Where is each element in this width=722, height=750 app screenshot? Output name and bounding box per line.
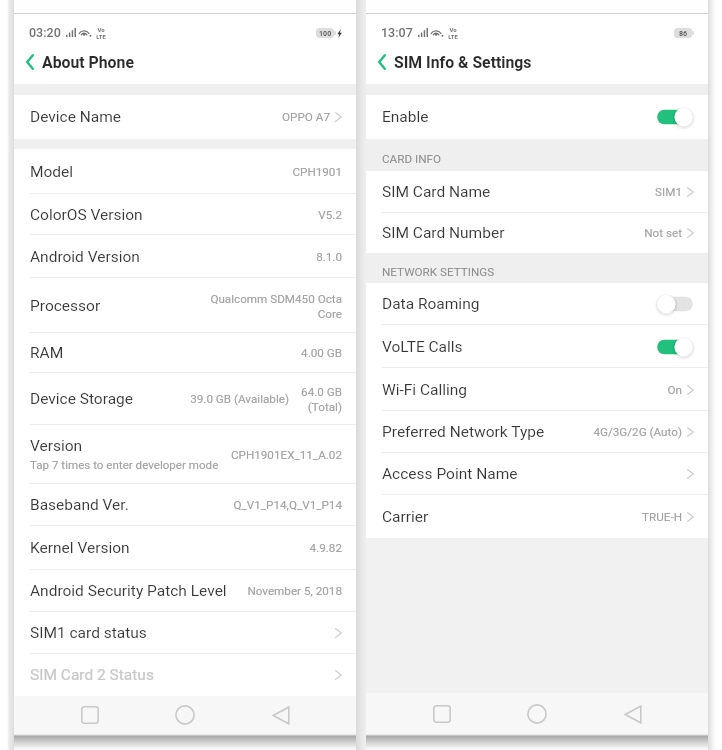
staticText: 8.1.0 — [316, 250, 342, 264]
staticText: 64.0 GB (Total) — [301, 385, 342, 413]
button[interactable]: Device Storage — [14, 373, 356, 425]
staticText: 4.9.82 — [309, 541, 342, 555]
button[interactable]: SIM Card Name — [366, 171, 708, 213]
staticText: 39.0 GB (Available) — [190, 392, 289, 406]
button[interactable]: Recent apps — [422, 694, 462, 734]
staticText: Enable — [382, 108, 429, 126]
button[interactable]: Kernel Version — [14, 526, 356, 570]
staticText: Android Security Patch Level — [30, 582, 227, 600]
button[interactable]: SIM1 card status — [14, 612, 356, 654]
staticText: V5.2 — [318, 208, 342, 222]
staticText: On — [667, 383, 682, 397]
staticText: Baseband Ver. — [30, 496, 129, 514]
staticText: Tap 7 times to enter developer mode — [30, 458, 219, 472]
staticText: CARD INFO — [382, 152, 442, 166]
staticText: SIM Card Number — [382, 224, 505, 242]
staticText: Carrier — [382, 508, 429, 526]
button[interactable]: Toggle off — [656, 293, 694, 315]
staticText: November 5, 2018 — [247, 584, 342, 598]
button[interactable]: Back — [613, 694, 653, 734]
button[interactable]: Back — [378, 51, 393, 73]
button[interactable]: RAM — [14, 333, 356, 373]
button[interactable]: Home — [517, 694, 557, 734]
button[interactable]: Android Security Patch Level — [14, 570, 356, 612]
button[interactable]: Back — [261, 696, 301, 734]
staticText: Vo — [449, 26, 457, 33]
staticText: SIM Info & Settings — [394, 53, 532, 72]
staticText: LTE — [448, 33, 458, 40]
staticText: TRUE-H — [642, 510, 682, 524]
staticText: RAM — [30, 344, 64, 362]
staticText: ColorOS Version — [30, 206, 143, 224]
button[interactable]: SIM Card Number — [366, 213, 708, 253]
button[interactable]: Data Roaming — [366, 283, 708, 325]
button[interactable]: Device Name — [14, 95, 356, 139]
staticText: SIM1 — [655, 185, 682, 199]
staticText: Device Storage — [30, 390, 134, 408]
staticText: 86 — [679, 29, 688, 37]
button[interactable]: Version — [14, 425, 356, 484]
staticText: Kernel Version — [30, 539, 130, 557]
staticText: SIM Card 2 Status — [30, 666, 154, 684]
staticText: 100 — [319, 29, 332, 37]
staticText: Model — [30, 163, 74, 181]
button[interactable]: VoLTE Calls — [366, 325, 708, 368]
staticText: NETWORK SETTINGS — [382, 265, 495, 279]
staticText: Android Version — [30, 248, 140, 266]
staticText: CPH1901EX_11_A.02 — [230, 448, 342, 462]
button[interactable]: Processor — [14, 278, 356, 333]
button[interactable]: Baseband Ver. — [14, 484, 356, 526]
staticText: Access Point Name — [382, 465, 518, 483]
button[interactable]: Toggle on — [656, 336, 694, 358]
staticText: SIM Card Name — [382, 183, 491, 201]
button[interactable]: Model — [14, 149, 356, 194]
button[interactable]: Toggle on — [656, 106, 694, 128]
staticText: Data Roaming — [382, 295, 480, 313]
staticText: About Phone — [42, 53, 134, 72]
staticText: SIM1 card status — [30, 624, 147, 642]
staticText: Vo — [97, 26, 105, 33]
button[interactable]: Recent apps — [70, 696, 110, 734]
button[interactable]: Back — [26, 51, 41, 73]
staticText: LTE — [96, 33, 106, 40]
staticText: 4.00 GB — [301, 346, 342, 360]
staticText: Processor — [30, 297, 101, 315]
staticText: Preferred Network Type — [382, 423, 545, 441]
staticText: Q_V1_P14,Q_V1_P14 — [233, 498, 342, 512]
button[interactable]: SIM Card 2 Status — [14, 654, 356, 696]
button[interactable]: Android Version — [14, 235, 356, 278]
staticText: Qualcomm SDM450 Octa Core — [210, 292, 342, 320]
staticText: 4G/3G/2G (Auto) — [593, 425, 682, 439]
staticText: Version — [30, 437, 83, 455]
staticText: OPPO A7 — [282, 110, 330, 124]
button[interactable]: Carrier — [366, 495, 708, 538]
button[interactable]: Enable — [366, 95, 708, 139]
staticText: CPH1901 — [292, 165, 342, 179]
button[interactable]: Home — [165, 696, 205, 734]
staticText: 03:20 — [29, 25, 61, 40]
staticText: 13:07 — [381, 25, 413, 40]
staticText: Wi-Fi Calling — [382, 381, 468, 399]
staticText: Not set — [644, 226, 682, 240]
button[interactable]: ColorOS Version — [14, 194, 356, 235]
staticText: VoLTE Calls — [382, 338, 463, 356]
staticText: Device Name — [30, 108, 122, 126]
button[interactable]: Wi-Fi Calling — [366, 368, 708, 411]
button[interactable]: Preferred Network Type — [366, 411, 708, 453]
button[interactable]: Access Point Name — [366, 453, 708, 495]
